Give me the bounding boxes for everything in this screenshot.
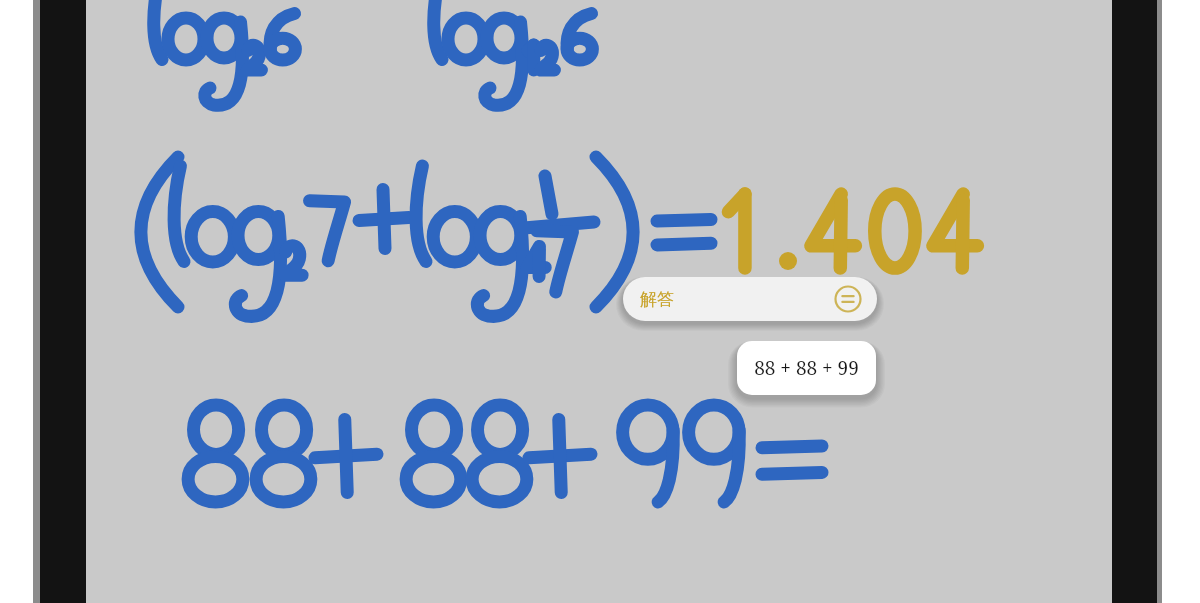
staticText: 88 + 88 + 99 <box>754 355 859 381</box>
staticText: 解答 <box>640 289 674 310</box>
button[interactable]: 解答 <box>623 277 877 321</box>
button[interactable]: 88 + 88 + 99 <box>737 341 876 395</box>
button[interactable]: Solve <box>831 282 865 316</box>
